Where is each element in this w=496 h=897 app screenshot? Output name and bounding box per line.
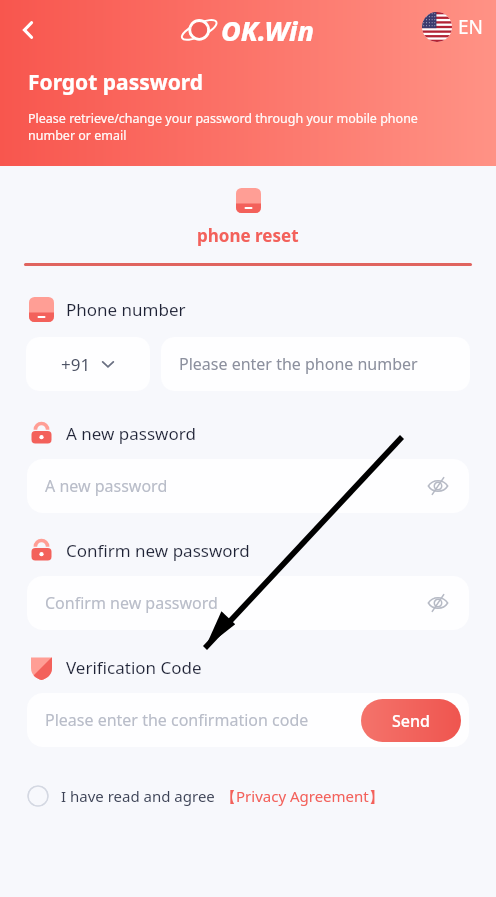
staticText: A new password [66,422,196,445]
staticText: I have read and agree [61,786,215,806]
button[interactable]: I have read and agree [27,785,496,807]
staticText: Confirm new password [66,539,250,562]
staticText: Forgot password [28,68,204,97]
staticText: 【Privacy Agreement】 [221,786,384,806]
button[interactable]: A new password [27,459,469,513]
staticText: Please retrieve/change your password thr… [28,110,460,144]
button[interactable]: Toggle password visibility [425,590,451,616]
button[interactable]: Please enter the phone number [161,337,470,391]
staticText: Phone number [66,298,186,321]
staticText: EN [458,14,484,40]
button[interactable]: EN [422,12,484,42]
button[interactable]: phone reset [0,188,496,266]
button[interactable]: Confirm new password [27,576,469,630]
staticText: Please enter the confirmation code [45,709,309,731]
button[interactable]: Back [8,10,48,50]
staticText: OK.Win [221,12,314,49]
button[interactable]: Send [361,699,461,742]
staticText: Verification Code [66,656,202,679]
staticText: Confirm new password [45,592,425,614]
staticText: Send [392,710,430,732]
button[interactable]: Please enter the confirmation code [27,693,469,747]
button[interactable]: Toggle password visibility [425,473,451,499]
staticText: +91 [61,353,91,376]
button[interactable]: +91 [26,337,150,391]
staticText: Please enter the phone number [179,353,418,375]
staticText: phone reset [197,224,299,247]
staticText: A new password [45,475,425,497]
